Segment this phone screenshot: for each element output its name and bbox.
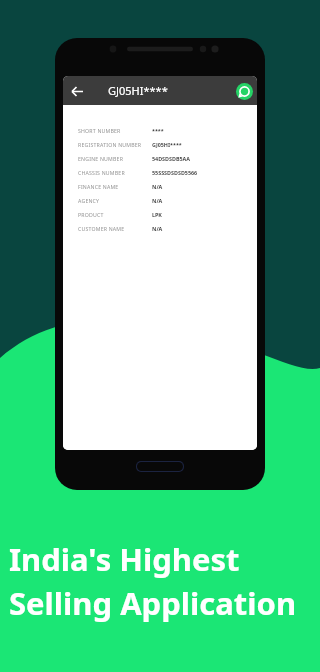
button[interactable]: Back bbox=[63, 77, 91, 105]
staticText: Selling Application bbox=[9, 582, 297, 624]
staticText: **** bbox=[152, 127, 164, 134]
staticText: ENGINE NUMBER bbox=[78, 155, 152, 162]
staticText: AGENCY bbox=[78, 197, 152, 204]
staticText: 55SSSDSDSD5566 bbox=[152, 169, 198, 176]
staticText: N/A bbox=[152, 225, 163, 232]
staticText: CHASSIS NUMBER bbox=[78, 169, 152, 176]
staticText: N/A bbox=[152, 183, 163, 190]
staticText: SHORT NUMBER bbox=[78, 127, 152, 134]
staticText: N/A bbox=[152, 197, 163, 204]
staticText: 54DSDSDB5AA bbox=[152, 155, 191, 162]
staticText: LPK bbox=[152, 211, 162, 218]
staticText: PRODUCT bbox=[78, 211, 152, 218]
staticText: GJ05HI**** bbox=[152, 141, 182, 148]
button[interactable]: Home bbox=[136, 461, 184, 472]
staticText: GJ05HI**** bbox=[108, 83, 168, 98]
staticText: FINANCE NAME bbox=[78, 183, 152, 190]
button[interactable]: WhatsApp bbox=[231, 78, 257, 104]
staticText: India's Highest bbox=[9, 538, 240, 580]
staticText: REGISTRATION NUMBER bbox=[78, 141, 152, 148]
staticText: CUSTOMER NAME bbox=[78, 225, 152, 232]
